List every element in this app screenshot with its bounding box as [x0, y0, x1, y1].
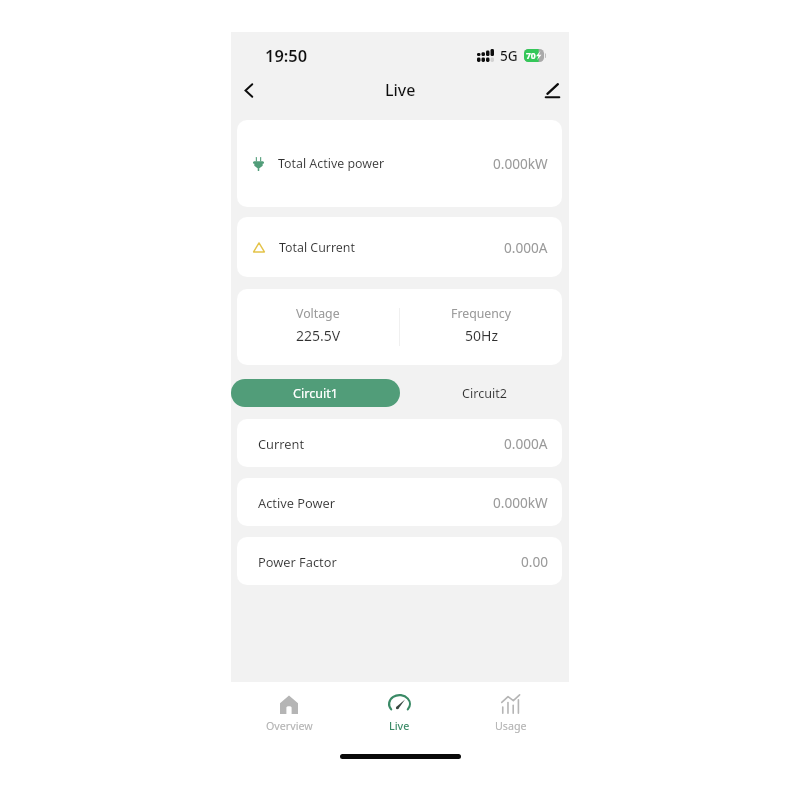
- button[interactable]: Power Factor: [237, 537, 562, 585]
- staticText: Overview: [266, 719, 313, 734]
- staticText: 0.000kW: [493, 154, 548, 173]
- staticText: Live: [385, 79, 416, 101]
- staticText: 0.00: [521, 552, 548, 571]
- button[interactable]: Live: [344, 688, 455, 740]
- staticText: Power Factor: [258, 553, 337, 570]
- button[interactable]: Circuit1: [231, 379, 400, 407]
- button[interactable]: Edit: [535, 78, 569, 102]
- staticText: 50Hz: [465, 326, 498, 345]
- staticText: Voltage: [296, 305, 340, 322]
- staticText: Active Power: [258, 494, 336, 511]
- staticText: 0.000A: [504, 434, 548, 453]
- staticText: 70: [526, 50, 536, 62]
- staticText: Circuit2: [462, 385, 507, 402]
- button[interactable]: Circuit2: [400, 379, 569, 407]
- button[interactable]: Total Active power: [237, 120, 562, 207]
- staticText: Live: [389, 719, 410, 734]
- staticText: 19:50: [265, 44, 308, 66]
- button[interactable]: Overview: [234, 688, 344, 740]
- button[interactable]: Active Power: [237, 478, 562, 526]
- staticText: Current: [258, 435, 305, 452]
- button[interactable]: Usage: [455, 688, 566, 740]
- button[interactable]: Back: [231, 78, 265, 102]
- button[interactable]: Voltage: [237, 289, 562, 365]
- staticText: 5G: [500, 46, 518, 65]
- staticText: 0.000kW: [493, 493, 548, 512]
- staticText: Frequency: [451, 305, 512, 322]
- staticText: Usage: [495, 719, 527, 734]
- staticText: Circuit1: [293, 385, 338, 402]
- button[interactable]: Total Current: [237, 217, 562, 277]
- staticText: Total Active power: [278, 155, 385, 172]
- staticText: 0.000A: [504, 238, 548, 257]
- staticText: 225.5V: [296, 326, 341, 345]
- staticText: Total Current: [279, 239, 355, 256]
- button[interactable]: Current: [237, 419, 562, 467]
